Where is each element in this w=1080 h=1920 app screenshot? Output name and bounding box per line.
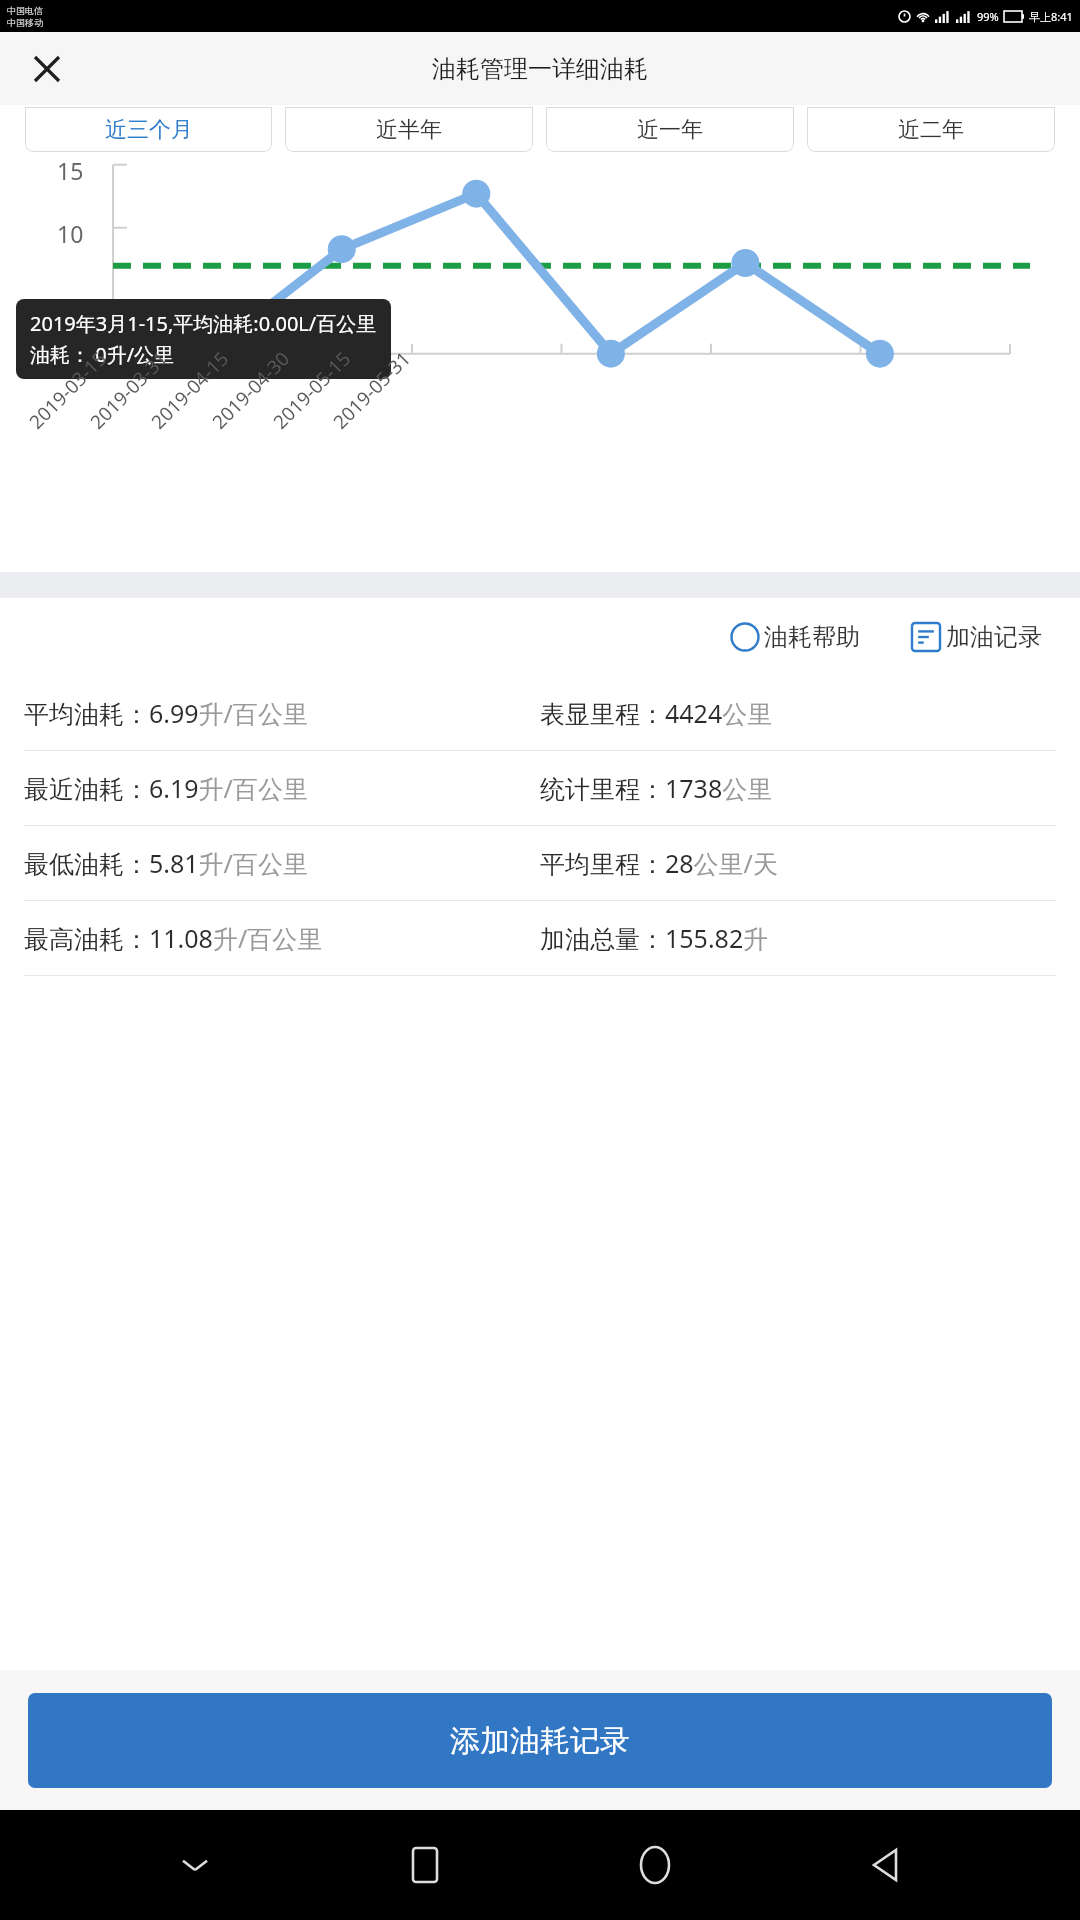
staticText: 近一年 xyxy=(637,116,703,144)
staticText: 99% xyxy=(977,9,999,24)
staticText: 0 xyxy=(71,342,85,373)
staticText: 最近油耗：6.19升/百公里 xyxy=(24,771,308,805)
button[interactable]: 油耗帮助 xyxy=(722,616,868,658)
staticText: 中国移动 xyxy=(7,17,43,28)
button[interactable]: Back xyxy=(850,1830,920,1900)
staticText: 油耗帮助 xyxy=(764,622,860,652)
staticText: 近二年 xyxy=(898,116,964,144)
button[interactable]: 近一年 xyxy=(546,107,794,152)
staticText: 统计里程：1738公里 xyxy=(540,771,773,805)
staticText: 油耗管理一详细油耗 xyxy=(432,54,648,84)
staticText: 中国电信 xyxy=(7,5,43,16)
button[interactable]: 近二年 xyxy=(807,107,1055,152)
staticText: 添加油耗记录 xyxy=(450,1722,630,1760)
staticText: 2019-04-30 xyxy=(206,345,296,435)
staticText: 2019-05-15 xyxy=(267,345,357,435)
staticText: 加油记录 xyxy=(946,622,1042,652)
staticText: 平均油耗：6.99升/百公里 xyxy=(24,696,308,730)
button[interactable]: 近三个月 xyxy=(25,107,272,152)
staticText: 2019-05-31 xyxy=(327,345,417,435)
staticText: 2019-04-15 xyxy=(145,345,235,435)
staticText: 15 xyxy=(57,155,84,186)
button[interactable]: Hide keyboard xyxy=(160,1830,230,1900)
staticText: 平均里程：28公里/天 xyxy=(540,846,778,880)
staticText: 2019-03-15 xyxy=(23,345,113,435)
button[interactable]: 近半年 xyxy=(285,107,533,152)
button[interactable]: 加油记录 xyxy=(904,616,1050,658)
staticText: 油耗： 0升/公里 xyxy=(30,341,175,368)
staticText: 最低油耗：5.81升/百公里 xyxy=(24,846,308,880)
button[interactable]: Recents xyxy=(390,1830,460,1900)
staticText: 表显里程：4424公里 xyxy=(540,696,773,730)
staticText: 最高油耗：11.08升/百公里 xyxy=(24,921,323,955)
staticText: 近半年 xyxy=(376,116,442,144)
staticText: 10 xyxy=(57,218,84,249)
staticText: 2019-03-31 xyxy=(84,345,174,435)
staticText: 加油总量：155.82升 xyxy=(540,921,769,955)
button[interactable]: Home xyxy=(620,1830,690,1900)
staticText: 6.99 xyxy=(328,309,372,339)
button[interactable]: Close xyxy=(22,44,72,94)
staticText: 早上8:41 xyxy=(1029,9,1073,24)
staticText: 2019年3月1-15,平均油耗:0.00L/百公里 xyxy=(30,310,377,337)
staticText: 近三个月 xyxy=(105,116,193,144)
button[interactable]: 添加油耗记录 xyxy=(28,1693,1052,1788)
